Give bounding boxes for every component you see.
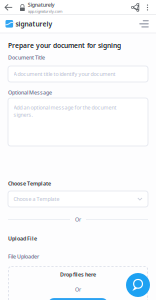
staticText: Document Title <box>8 54 45 61</box>
staticText: A document title to identify your docume… <box>13 70 115 78</box>
staticText: Choose Template <box>8 180 51 187</box>
staticText: Optional Message <box>8 89 52 96</box>
button[interactable]: Select File <box>48 298 108 300</box>
staticText: Prepare your document for signing <box>8 41 121 50</box>
staticText: Add an optional message for the document… <box>13 104 116 118</box>
staticText: Or <box>75 216 81 223</box>
button[interactable]: Chat support <box>126 273 150 297</box>
staticText: File Uploader <box>8 253 39 260</box>
button[interactable]: Choose a Template <box>8 191 148 207</box>
staticText: Upload File <box>8 235 37 242</box>
staticText: Or <box>75 286 81 293</box>
staticText: Choose a Template <box>13 195 59 203</box>
staticText: Drop files here <box>60 271 96 278</box>
staticText: signaturely <box>16 19 53 28</box>
button[interactable]: Back <box>2 1 15 14</box>
staticText: app.signaturely.com <box>28 8 63 14</box>
button[interactable]: Menu <box>137 17 151 31</box>
button[interactable]: Share <box>128 1 142 14</box>
button[interactable]: More options <box>142 1 153 14</box>
staticText: Signaturely <box>28 1 55 8</box>
